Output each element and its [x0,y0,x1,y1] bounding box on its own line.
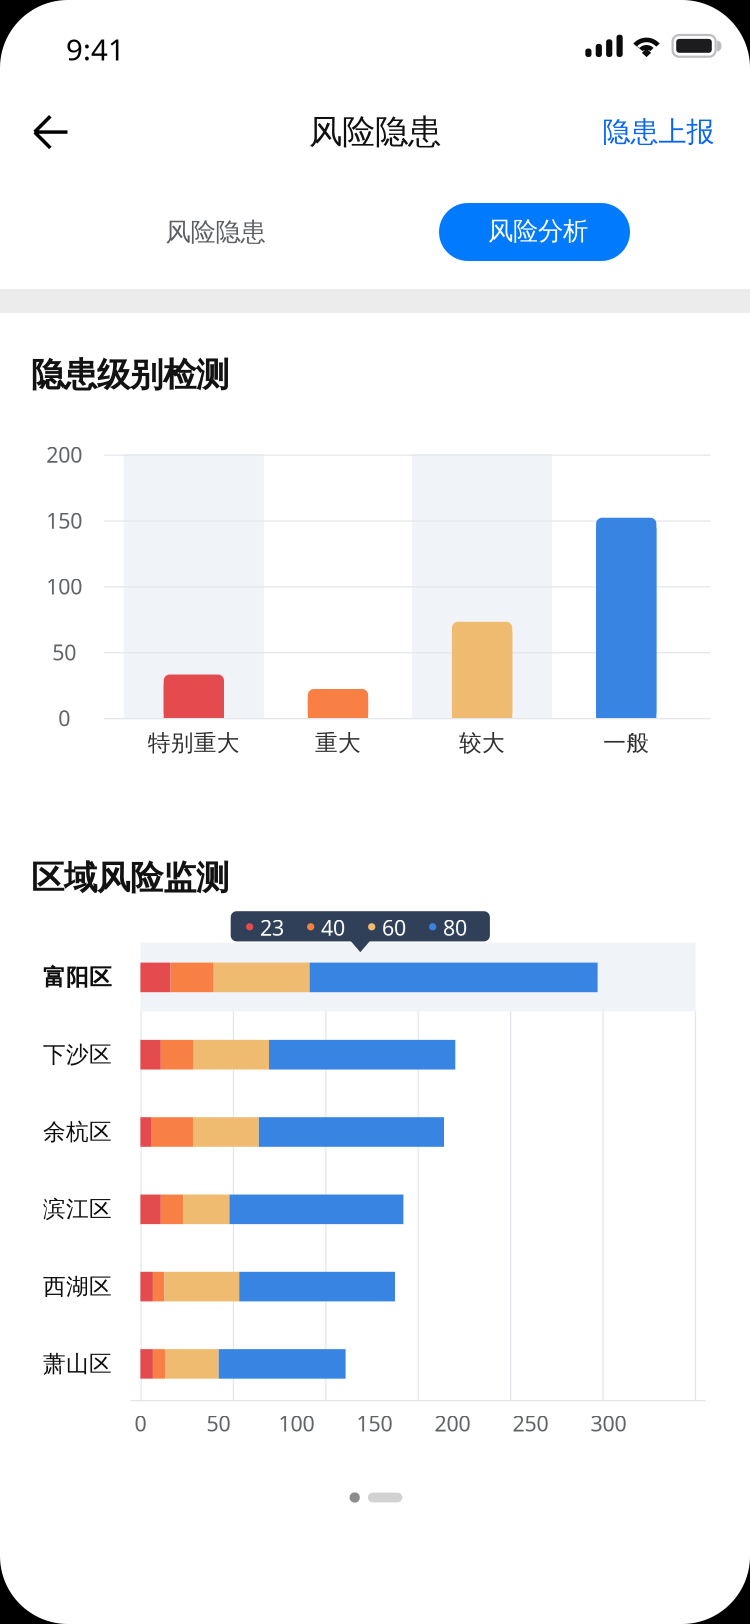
staticText: 风险隐患 [165,216,265,247]
staticText: 富阳区 [43,963,112,991]
staticText: 250 [512,1409,548,1437]
button[interactable]: 风险隐患 [120,203,311,261]
staticText: 滨江区 [43,1195,112,1223]
staticText: 150 [356,1409,392,1437]
staticText: 隐患上报 [602,115,714,149]
staticText: 60 [382,913,406,942]
staticText: 隐患级别检测 [31,354,229,395]
staticText: 特别重大 [148,729,240,757]
staticText: 40 [321,913,345,942]
staticText: 50 [52,638,76,666]
staticText: 余杭区 [43,1118,112,1146]
staticText: 西湖区 [43,1273,112,1300]
staticText: 区域风险监测 [31,857,229,898]
staticText: 0 [58,704,70,732]
staticText: 100 [278,1409,314,1437]
staticText: 萧山区 [43,1350,112,1378]
staticText: 300 [590,1409,626,1437]
staticText: 一般 [603,729,649,757]
button[interactable]: 隐患上报 [586,104,731,160]
staticText: 0 [134,1409,146,1437]
staticText: 风险分析 [488,215,588,246]
button[interactable]: 风险分析 [439,203,630,261]
staticText: 200 [434,1409,470,1437]
staticText: 风险隐患 [309,111,441,152]
staticText: 150 [46,506,82,534]
staticText: 下沙区 [43,1041,112,1069]
staticText: 200 [46,440,82,469]
staticText: 9:41 [66,29,125,68]
button[interactable]: 返回 [14,100,86,164]
staticText: 23 [260,913,284,942]
staticText: 较大 [459,729,505,757]
staticText: 100 [46,572,82,600]
staticText: 50 [206,1409,230,1437]
staticText: 80 [443,913,467,942]
staticText: 重大 [315,729,361,757]
